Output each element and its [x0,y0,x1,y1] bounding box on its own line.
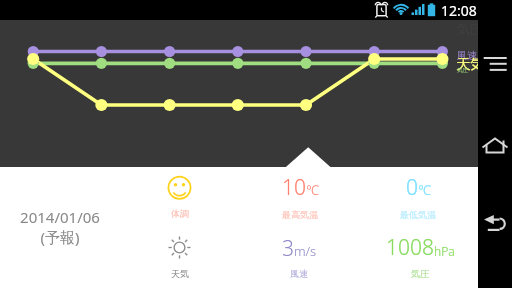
button[interactable]: Menu [478,44,512,84]
staticText: 風速 [457,49,477,62]
staticText: 最高気温 [282,209,318,220]
button[interactable]: Back [478,204,512,244]
staticText: 12:08 [441,1,477,20]
staticText: 気圧 [411,268,429,279]
staticText: ℃ [306,181,319,199]
staticText: 1008 [386,233,434,261]
staticText: 天気 [456,55,485,73]
staticText: 風速 [290,268,308,279]
staticText: 2014/01/06 [20,207,100,227]
staticText: 体調 [171,208,189,219]
staticText: (予報) [40,227,80,247]
staticText: 0 [406,173,418,201]
staticText: 気圧 [457,21,483,37]
staticText: 最低気温 [400,209,436,220]
staticText: hPa [434,243,455,259]
staticText: 天気 [171,268,189,279]
staticText: 気圧 [457,67,468,74]
button[interactable]: Home [478,124,512,164]
staticText: 3 [282,234,294,262]
staticText: m/s [294,242,317,260]
staticText: 10 [282,173,306,201]
staticText: ℃ [418,181,431,199]
